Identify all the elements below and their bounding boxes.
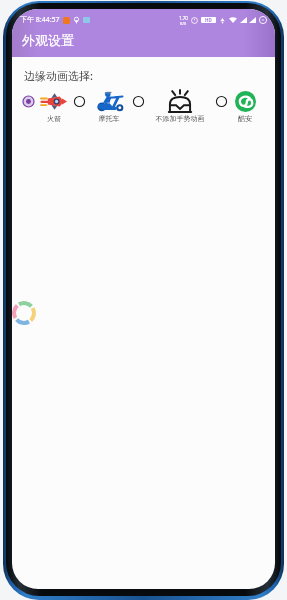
staticText: 酷安 bbox=[230, 114, 260, 123]
staticText: 1.70 bbox=[179, 15, 188, 21]
staticText: 火箭 bbox=[37, 114, 71, 123]
staticText: 不添加手势动画 bbox=[147, 114, 213, 123]
button[interactable]: 摩托车 bbox=[71, 89, 130, 123]
staticText: 下午 8:44:57 bbox=[20, 15, 60, 25]
button[interactable]: 火箭 bbox=[20, 89, 71, 123]
staticText: HD bbox=[205, 17, 212, 23]
staticText: K/S bbox=[180, 21, 187, 26]
button[interactable]: 酷安 bbox=[213, 89, 260, 123]
staticText: 边缘动画选择: bbox=[24, 68, 93, 83]
staticText: 外观设置 bbox=[22, 32, 74, 48]
staticText: 摩托车 bbox=[88, 114, 130, 123]
button[interactable]: 不添加手势动画 bbox=[130, 89, 213, 123]
